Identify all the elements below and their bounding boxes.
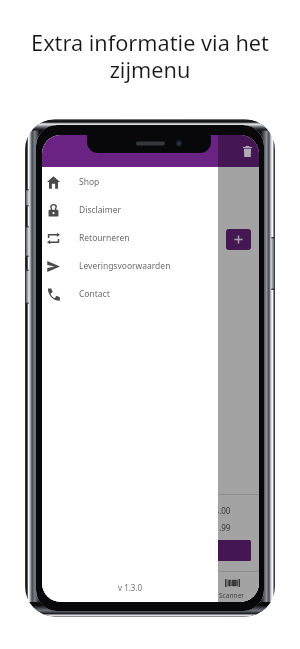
- staticText: Shop: [79, 176, 100, 188]
- button[interactable]: Scanner: [205, 571, 259, 602]
- staticText: Leveringsvoorwaarden: [79, 260, 171, 272]
- button[interactable]: Contact: [42, 280, 218, 308]
- button[interactable]: Zoeken: [97, 571, 151, 602]
- button[interactable]: Toevoegen: [226, 229, 251, 250]
- button[interactable]: Leveringsvoorwaarden: [42, 252, 218, 280]
- staticText: Disclaimer: [79, 204, 121, 216]
- staticText: Extra informatie via het zijmenu: [12, 28, 288, 84]
- staticText: Contact: [79, 288, 110, 300]
- staticText: Retourneren: [79, 232, 130, 244]
- button[interactable]: Shop: [42, 571, 97, 602]
- button[interactable]: Verwijderen: [237, 141, 257, 161]
- staticText: 21.99: [210, 522, 231, 533]
- button[interactable]: [72, 540, 251, 561]
- button[interactable]: Shop: [42, 168, 218, 196]
- button[interactable]: Retourneren: [42, 224, 218, 252]
- staticText: 34.00: [210, 505, 231, 516]
- button[interactable]: Disclaimer: [42, 196, 218, 224]
- staticText: v 1.3.0: [118, 582, 143, 593]
- staticText: Scanner: [219, 591, 245, 600]
